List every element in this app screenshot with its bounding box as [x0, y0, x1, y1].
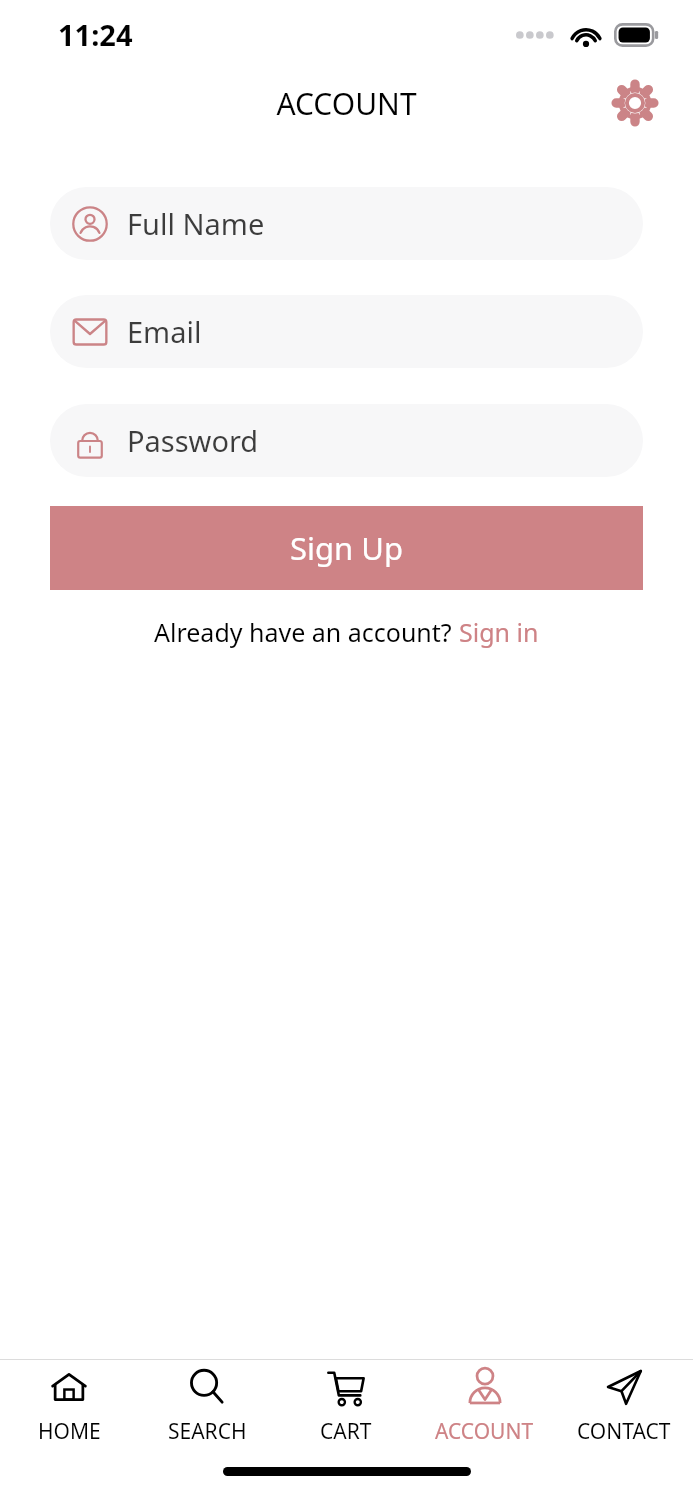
button[interactable]: Settings	[607, 75, 663, 131]
staticText: Full Name	[127, 204, 265, 243]
staticText: 11:24	[58, 15, 133, 54]
button[interactable]: Password	[50, 404, 643, 477]
staticText: Password	[127, 421, 259, 460]
staticText: ACCOUNT	[276, 83, 417, 124]
button[interactable]: Sign Up	[50, 506, 643, 590]
staticText: SEARCH	[168, 1417, 247, 1446]
button[interactable]: HOME	[0, 1360, 138, 1452]
staticText: CONTACT	[577, 1417, 671, 1446]
button[interactable]: Full Name	[50, 187, 643, 260]
staticText: Sign Up	[290, 527, 404, 569]
button[interactable]: CONTACT	[554, 1360, 693, 1452]
button[interactable]: Sign in	[459, 615, 539, 649]
staticText: Sign in	[459, 615, 539, 649]
button[interactable]: ACCOUNT	[415, 1360, 554, 1452]
button[interactable]: SEARCH	[138, 1360, 276, 1452]
staticText: Already have an account?	[154, 615, 459, 649]
button[interactable]: Email	[50, 295, 643, 368]
staticText: ACCOUNT	[435, 1417, 534, 1446]
staticText: CART	[320, 1417, 372, 1446]
button[interactable]: CART	[276, 1360, 415, 1452]
staticText: Email	[127, 312, 202, 351]
staticText: HOME	[38, 1417, 101, 1446]
